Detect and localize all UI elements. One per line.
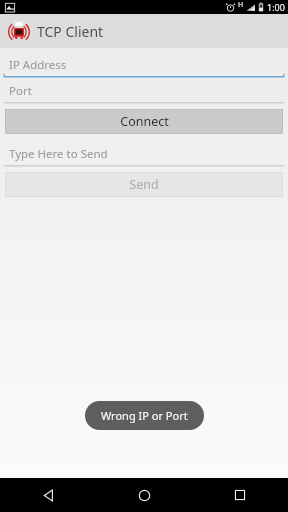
button[interactable]: Back bbox=[0, 478, 96, 512]
staticText: Wrong IP or Port bbox=[101, 408, 188, 423]
button[interactable]: IP Address bbox=[0, 52, 288, 78]
button[interactable]: Recents bbox=[192, 478, 288, 512]
staticText: TCP Client bbox=[37, 22, 104, 41]
staticText: 1:00 bbox=[267, 1, 285, 13]
staticText: H bbox=[238, 0, 244, 10]
button[interactable]: Home bbox=[96, 478, 192, 512]
button[interactable]: Send bbox=[5, 172, 283, 197]
button[interactable]: Port bbox=[0, 78, 288, 104]
staticText: Connect bbox=[120, 113, 169, 130]
staticText: Type Here to Send bbox=[9, 146, 108, 162]
button[interactable]: Connect bbox=[5, 109, 283, 134]
staticText: Port bbox=[9, 83, 32, 99]
staticText: Send bbox=[129, 176, 159, 193]
button[interactable]: Type Here to Send bbox=[0, 141, 288, 167]
staticText: IP Address bbox=[9, 57, 67, 73]
